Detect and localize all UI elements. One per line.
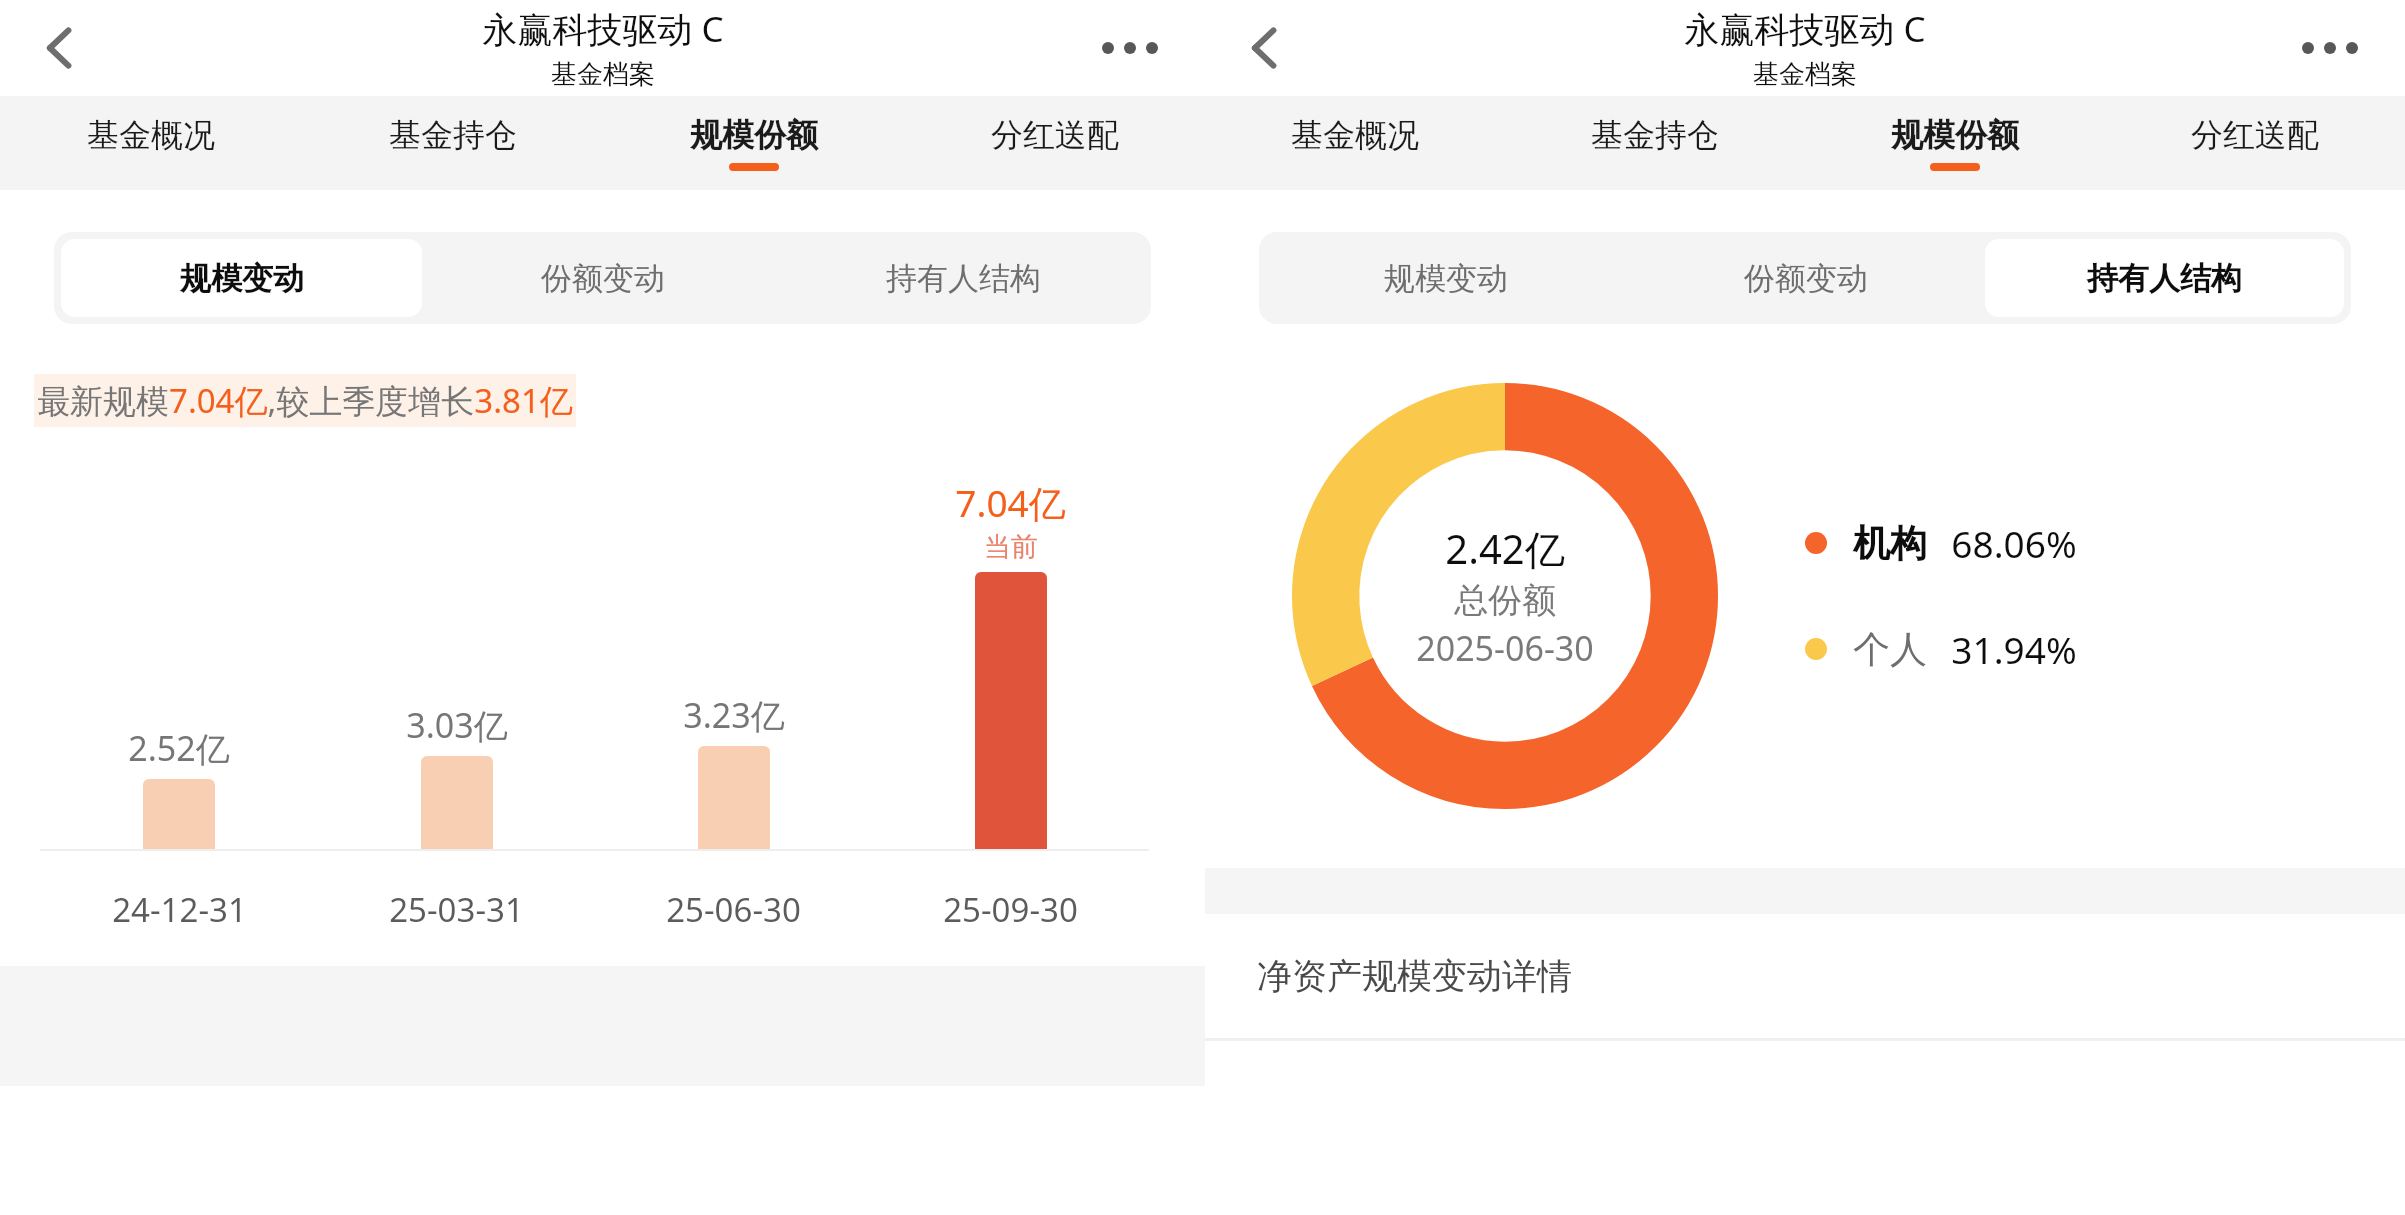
button[interactable]: Back <box>1225 8 1305 88</box>
staticText: 2.52亿 <box>128 725 230 771</box>
button[interactable]: 基金概况 <box>1205 96 1505 190</box>
button[interactable]: 份额变动 <box>1626 239 1985 317</box>
staticText: 最新规模7.04亿,较上季度增长3.81亿 <box>37 378 573 423</box>
staticText: 基金持仓 <box>1591 115 1719 155</box>
button[interactable]: 规模变动 <box>61 239 422 317</box>
button[interactable]: 规模份额 <box>603 96 904 190</box>
staticText: 25-03-31 <box>389 887 524 932</box>
staticText: 25-06-30 <box>666 887 801 932</box>
staticText: 分红送配 <box>991 115 1119 155</box>
staticText: 机构 <box>1853 520 1927 567</box>
button[interactable]: 基金持仓 <box>1505 96 1805 190</box>
button[interactable]: 基金概况 <box>0 96 302 190</box>
staticText: 规模份额 <box>690 115 818 155</box>
staticText: 总份额 <box>1454 579 1556 622</box>
staticText: 当前 <box>984 530 1038 564</box>
staticText: 24-12-31 <box>112 887 247 932</box>
staticText: 持有人结构 <box>2087 259 2242 298</box>
staticText: 基金档案 <box>1753 58 1857 91</box>
staticText: 68.06% <box>1951 518 2077 568</box>
button[interactable]: 基金持仓 <box>302 96 603 190</box>
staticText: 基金持仓 <box>389 115 517 155</box>
button[interactable]: Back <box>20 8 100 88</box>
staticText: 永赢科技驱动 C <box>482 5 724 53</box>
staticText: 分红送配 <box>2191 115 2319 155</box>
staticText: 2.42亿 <box>1445 521 1565 576</box>
button[interactable]: More options <box>1085 3 1175 93</box>
staticText: 31.94% <box>1951 624 2077 674</box>
staticText: 永赢科技驱动 C <box>1684 5 1926 53</box>
staticText: 规模变动 <box>1384 259 1508 298</box>
staticText: 持有人结构 <box>886 259 1041 298</box>
staticText: 规模变动 <box>180 259 304 298</box>
button[interactable]: 规模变动 <box>1266 239 1626 317</box>
staticText: 基金概况 <box>1291 115 1419 155</box>
staticText: 3.23亿 <box>683 692 785 738</box>
button[interactable]: 份额变动 <box>422 239 783 317</box>
button[interactable]: 机构 <box>1805 518 2077 568</box>
staticText: 基金档案 <box>551 58 655 91</box>
staticText: 份额变动 <box>541 259 665 298</box>
staticText: 2025-06-30 <box>1416 625 1594 671</box>
button[interactable]: 持有人结构 <box>1985 239 2344 317</box>
button[interactable]: 持有人结构 <box>783 239 1144 317</box>
staticText: 3.03亿 <box>406 702 508 748</box>
button[interactable]: 个人 <box>1805 624 2077 674</box>
button[interactable]: More options <box>2285 3 2375 93</box>
staticText: 个人 <box>1853 626 1927 673</box>
staticText: 规模份额 <box>1891 115 2019 155</box>
staticText: 净资产规模变动详情 <box>1257 954 1572 998</box>
staticText: 份额变动 <box>1744 259 1868 298</box>
button[interactable]: 规模份额 <box>1805 96 2105 190</box>
staticText: 25-09-30 <box>943 887 1078 932</box>
staticText: 7.04亿 <box>955 477 1066 528</box>
staticText: 基金概况 <box>87 115 215 155</box>
button[interactable]: 分红送配 <box>904 96 1205 190</box>
button[interactable]: 分红送配 <box>2105 96 2405 190</box>
